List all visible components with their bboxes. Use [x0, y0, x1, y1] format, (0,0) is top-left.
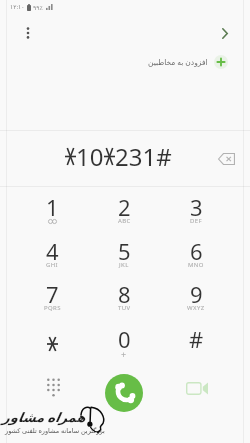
button[interactable]: افزودن به مخاطبین — [143, 49, 246, 74]
button[interactable]: 0 — [88, 324, 160, 367]
staticText: 4 — [46, 236, 59, 262]
staticText: 3 — [190, 192, 203, 218]
staticText: PQRS — [44, 304, 61, 312]
button[interactable]: 5 — [88, 236, 160, 279]
staticText: ABC — [118, 217, 131, 225]
button[interactable] — [16, 324, 88, 367]
staticText: 8 — [118, 279, 131, 305]
button[interactable]: Backspace — [213, 146, 239, 172]
staticText: بزرگترین سامانه مشاوره تلفنی کشور — [5, 426, 105, 435]
button[interactable]: # — [160, 324, 232, 367]
button[interactable]: 2 — [88, 192, 160, 235]
staticText: همراه مشاور — [2, 408, 86, 426]
button[interactable]: Video call — [183, 374, 211, 402]
staticText: ۹۹٪ — [33, 4, 43, 11]
button[interactable]: 4 — [16, 236, 88, 279]
staticText: + — [121, 348, 127, 358]
button[interactable]: 8 — [88, 279, 160, 322]
staticText: 7 — [46, 279, 59, 305]
staticText: # — [189, 324, 204, 350]
button[interactable]: 7 — [16, 279, 88, 322]
staticText: افزودن به مخاطبین — [148, 57, 208, 67]
button[interactable]: More options — [16, 21, 40, 45]
staticText: GHI — [46, 261, 59, 269]
staticText: 0 — [118, 324, 131, 350]
button[interactable]: Call — [105, 374, 143, 412]
staticText: MNO — [188, 261, 204, 269]
staticText: 231# — [115, 140, 172, 173]
button[interactable]: 6 — [160, 236, 232, 279]
button[interactable]: 9 — [160, 279, 232, 322]
button[interactable]: Expand — [213, 21, 237, 45]
staticText: WXYZ — [187, 304, 205, 312]
button[interactable]: Keypad — [39, 373, 67, 401]
button[interactable]: 3 — [160, 192, 232, 235]
button[interactable]: 1 — [16, 192, 88, 235]
staticText: 10 — [76, 140, 104, 173]
staticText: 6 — [190, 236, 203, 262]
staticText: 5 — [118, 236, 131, 262]
staticText: 1 — [46, 192, 59, 218]
staticText: TUV — [118, 304, 131, 312]
staticText: ۱۲:۱۰ — [10, 3, 25, 11]
staticText: DEF — [190, 217, 203, 225]
staticText: 2 — [118, 192, 131, 218]
staticText: JKL — [119, 261, 129, 269]
staticText: 9 — [190, 279, 203, 305]
